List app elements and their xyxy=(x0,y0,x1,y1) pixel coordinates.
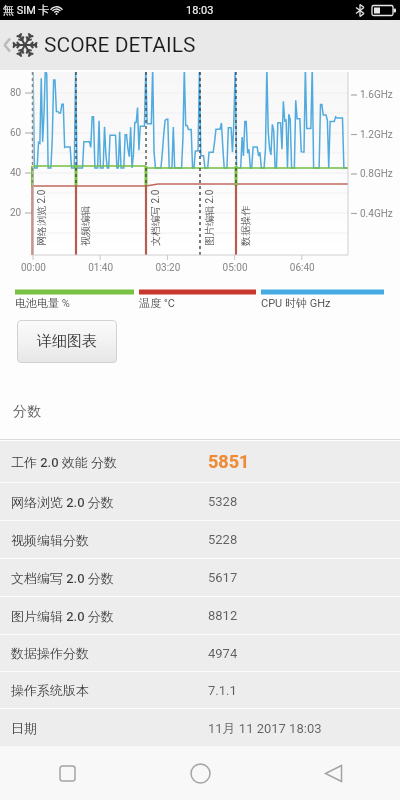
staticText: 网络浏览 2.0 分数 xyxy=(11,494,208,510)
staticText: 5851 xyxy=(208,451,250,472)
staticText: 4974 xyxy=(208,646,238,661)
button[interactable]: 网络浏览 2.0 分数 xyxy=(0,483,400,520)
button[interactable]: 数据操作分数 xyxy=(0,635,400,671)
button[interactable]: 操作系统版本 xyxy=(0,672,400,708)
staticText: 视频编辑分数 xyxy=(11,532,208,548)
button[interactable]: Back xyxy=(0,20,44,70)
staticText: 数据操作分数 xyxy=(11,645,208,661)
staticText: 工作 2.0 效能 分数 xyxy=(11,454,208,470)
staticText: SCORE DETAILS xyxy=(44,33,196,58)
staticText: 18:03 xyxy=(186,4,214,17)
staticText: 11月 11 2017 18:03 xyxy=(208,720,322,736)
staticText: 图片编辑 2.0 分数 xyxy=(11,608,208,624)
button[interactable]: 详细图表 xyxy=(17,320,117,363)
staticText: 5228 xyxy=(208,532,238,547)
staticText: 5328 xyxy=(208,494,238,509)
staticText: 8812 xyxy=(208,608,238,623)
staticText: 文档编写 2.0 分数 xyxy=(11,570,208,586)
button[interactable]: Back xyxy=(267,746,400,800)
button[interactable]: 图片编辑 2.0 分数 xyxy=(0,597,400,634)
button[interactable]: Home xyxy=(134,746,267,800)
staticText: 分数 xyxy=(13,403,41,421)
staticText: 日期 xyxy=(11,720,208,736)
staticText: 详细图表 xyxy=(37,332,97,351)
button[interactable]: 文档编写 2.0 分数 xyxy=(0,559,400,596)
staticText: 7.1.1 xyxy=(208,683,237,698)
staticText: 操作系统版本 xyxy=(11,682,208,698)
button[interactable]: 视频编辑分数 xyxy=(0,521,400,558)
button[interactable]: Recent apps xyxy=(0,746,134,800)
staticText: 無 SIM 卡 xyxy=(3,3,50,17)
staticText: 5617 xyxy=(208,570,238,585)
button[interactable]: 工作 2.0 效能 分数 xyxy=(0,441,400,482)
button[interactable]: 日期 xyxy=(0,709,400,746)
